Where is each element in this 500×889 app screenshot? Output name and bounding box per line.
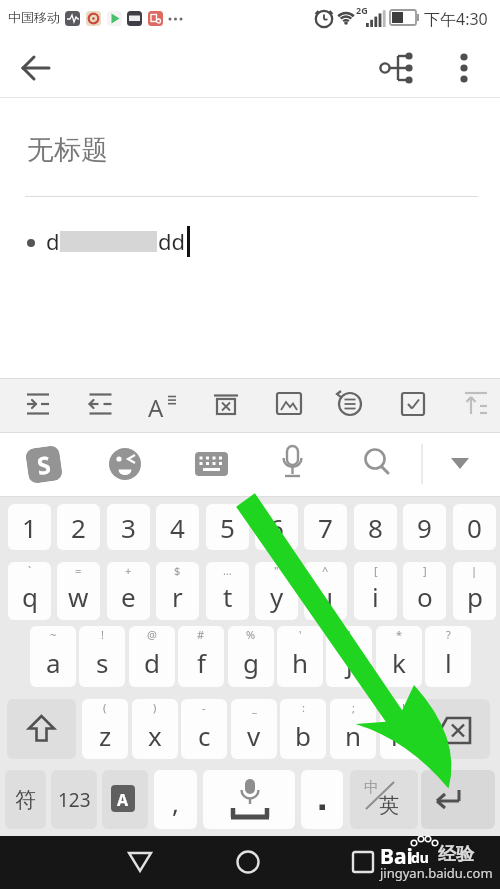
staticText: w bbox=[68, 579, 89, 614]
button[interactable]: @ bbox=[129, 626, 175, 687]
staticText: 符 bbox=[15, 787, 36, 813]
button[interactable]: = bbox=[57, 562, 100, 620]
staticText: ? bbox=[446, 627, 451, 642]
staticText: - bbox=[202, 700, 206, 715]
staticText: e bbox=[121, 579, 136, 614]
button[interactable]: … bbox=[206, 562, 249, 620]
button[interactable] bbox=[203, 770, 295, 829]
staticText: _ bbox=[252, 700, 257, 715]
button[interactable] bbox=[224, 838, 272, 886]
staticText: $ bbox=[174, 563, 181, 578]
button[interactable] bbox=[202, 381, 250, 429]
button[interactable]: ( bbox=[82, 699, 128, 759]
staticText: z bbox=[99, 718, 112, 753]
button[interactable]: ' bbox=[326, 626, 372, 687]
button[interactable] bbox=[264, 381, 312, 429]
button[interactable]: S bbox=[25, 445, 63, 484]
button[interactable] bbox=[266, 440, 314, 488]
button[interactable]: * bbox=[376, 626, 422, 687]
button[interactable]: " bbox=[255, 562, 298, 620]
staticText: 123 bbox=[58, 787, 91, 813]
staticText: 无标题 bbox=[27, 133, 108, 167]
staticText: 中 bbox=[364, 778, 379, 797]
staticText: s bbox=[96, 645, 109, 680]
button[interactable] bbox=[7, 699, 76, 759]
button[interactable]: ; bbox=[330, 699, 376, 759]
staticText: | bbox=[471, 563, 478, 578]
button[interactable] bbox=[452, 381, 500, 429]
button[interactable]: 1 bbox=[8, 504, 51, 550]
button[interactable]: ] bbox=[403, 562, 446, 620]
staticText: o bbox=[417, 579, 433, 614]
button[interactable]: ^ bbox=[304, 562, 347, 620]
button[interactable]: 9 bbox=[403, 504, 446, 550]
staticText: 2 bbox=[71, 510, 86, 545]
button[interactable]: 7 bbox=[304, 504, 347, 550]
button[interactable]: $ bbox=[156, 562, 199, 620]
staticText: 下午4:30 bbox=[424, 8, 488, 30]
button[interactable]: , bbox=[154, 770, 197, 829]
button[interactable] bbox=[339, 838, 387, 886]
button[interactable] bbox=[389, 381, 437, 429]
button[interactable] bbox=[351, 440, 399, 488]
staticText: c bbox=[198, 718, 211, 753]
button[interactable]: 0 bbox=[453, 504, 496, 550]
button[interactable] bbox=[185, 440, 233, 488]
button[interactable]: - bbox=[181, 699, 227, 759]
staticText: + bbox=[125, 563, 132, 578]
button[interactable] bbox=[77, 381, 125, 429]
button[interactable]: ) bbox=[132, 699, 178, 759]
staticText: A bbox=[117, 789, 129, 811]
button[interactable]: _ bbox=[231, 699, 277, 759]
button[interactable]: # bbox=[178, 626, 224, 687]
staticText: ( bbox=[103, 700, 107, 715]
button[interactable]: 2 bbox=[57, 504, 100, 550]
button[interactable]: 符 bbox=[5, 770, 46, 829]
staticText: ! bbox=[402, 700, 405, 715]
button[interactable]: 3 bbox=[107, 504, 150, 550]
staticText: Bai bbox=[380, 842, 413, 871]
button[interactable] bbox=[421, 770, 495, 829]
staticText: 经验 bbox=[438, 843, 474, 866]
button[interactable]: ~ bbox=[30, 626, 76, 687]
button[interactable]: 5 bbox=[206, 504, 249, 550]
staticText: 6 bbox=[269, 510, 284, 545]
staticText: 1 bbox=[22, 510, 37, 545]
button[interactable] bbox=[436, 440, 484, 488]
button[interactable]: 123 bbox=[51, 770, 97, 829]
staticText: % bbox=[246, 627, 256, 642]
button[interactable] bbox=[301, 770, 343, 829]
staticText: q bbox=[22, 579, 38, 614]
button[interactable]: ! bbox=[79, 626, 125, 687]
button[interactable] bbox=[441, 45, 487, 91]
button[interactable] bbox=[139, 381, 187, 429]
button[interactable]: ` bbox=[8, 562, 51, 620]
button[interactable]: % bbox=[228, 626, 274, 687]
button[interactable]: + bbox=[107, 562, 150, 620]
staticText: 英 bbox=[379, 793, 399, 818]
button[interactable]: ! bbox=[380, 699, 426, 759]
staticText: dd bbox=[158, 226, 186, 256]
button[interactable]: 6 bbox=[255, 504, 298, 550]
button[interactable] bbox=[14, 381, 62, 429]
button[interactable]: 4 bbox=[156, 504, 199, 550]
staticText: ' bbox=[299, 627, 302, 642]
button[interactable]: ? bbox=[425, 626, 471, 687]
staticText: , bbox=[172, 785, 179, 820]
staticText: d bbox=[46, 226, 60, 256]
button[interactable] bbox=[327, 381, 375, 429]
button[interactable]: ' bbox=[277, 626, 323, 687]
button[interactable]: 8 bbox=[354, 504, 397, 550]
button[interactable] bbox=[12, 45, 58, 91]
button[interactable] bbox=[350, 770, 418, 829]
button[interactable] bbox=[423, 699, 490, 759]
button[interactable]: | bbox=[453, 562, 496, 620]
button[interactable] bbox=[102, 770, 148, 829]
staticText: a bbox=[46, 645, 61, 680]
button[interactable] bbox=[116, 838, 164, 886]
button[interactable] bbox=[374, 45, 420, 91]
button[interactable]: : bbox=[280, 699, 326, 759]
button[interactable] bbox=[101, 440, 149, 488]
staticText: = bbox=[75, 563, 82, 578]
button[interactable]: [ bbox=[354, 562, 397, 620]
